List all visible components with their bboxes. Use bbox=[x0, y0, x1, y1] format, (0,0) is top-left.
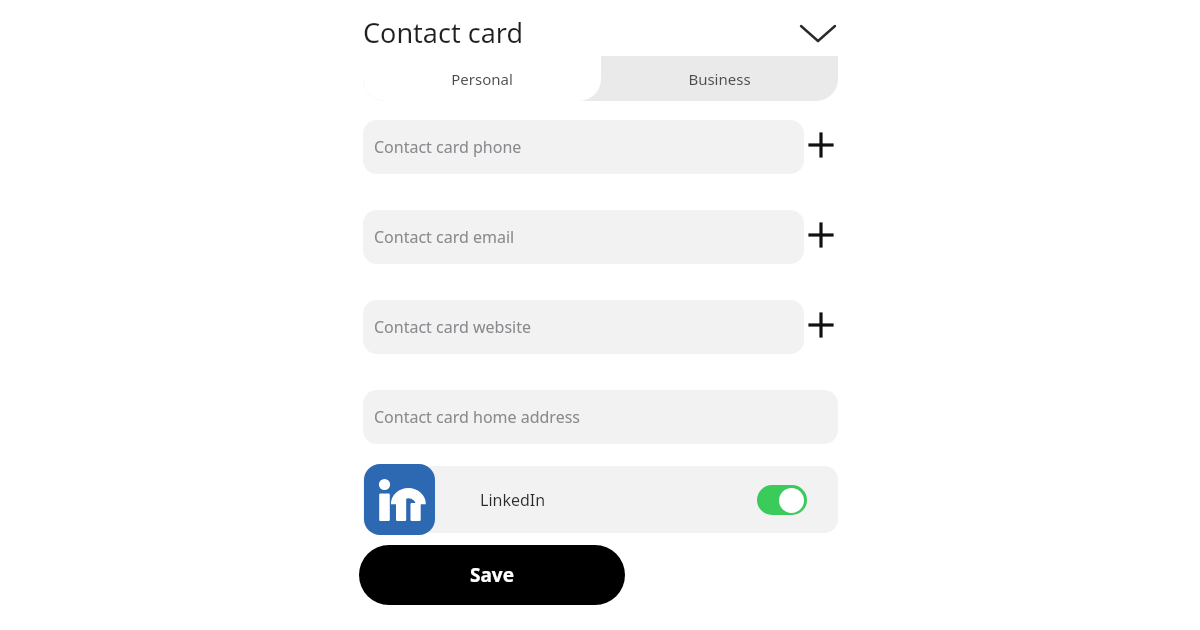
staticText: Contact card email bbox=[374, 226, 515, 248]
staticText: Save bbox=[470, 562, 515, 588]
button[interactable]: Add bbox=[804, 128, 838, 162]
button[interactable]: Contact card email bbox=[363, 210, 804, 264]
button[interactable]: Collapse bbox=[798, 14, 838, 50]
staticText: Contact card home address bbox=[374, 406, 581, 428]
staticText: LinkedIn bbox=[480, 489, 546, 511]
button[interactable]: Business bbox=[601, 56, 838, 101]
button[interactable]: Add bbox=[804, 218, 838, 252]
button[interactable]: Contact card home address bbox=[363, 390, 838, 444]
staticText: Personal bbox=[451, 69, 513, 89]
staticText: Contact card phone bbox=[374, 136, 522, 158]
button[interactable]: LinkedIn enabled bbox=[757, 485, 807, 515]
button[interactable]: Personal bbox=[363, 56, 601, 101]
button[interactable]: Contact card website bbox=[363, 300, 804, 354]
staticText: Business bbox=[688, 69, 751, 89]
button[interactable]: Save bbox=[359, 545, 625, 605]
button[interactable]: Contact card phone bbox=[363, 120, 804, 174]
staticText: Contact card website bbox=[374, 316, 532, 338]
button[interactable]: LinkedIn bbox=[363, 466, 838, 533]
staticText: Contact card bbox=[363, 14, 524, 50]
button[interactable]: Add bbox=[804, 308, 838, 342]
